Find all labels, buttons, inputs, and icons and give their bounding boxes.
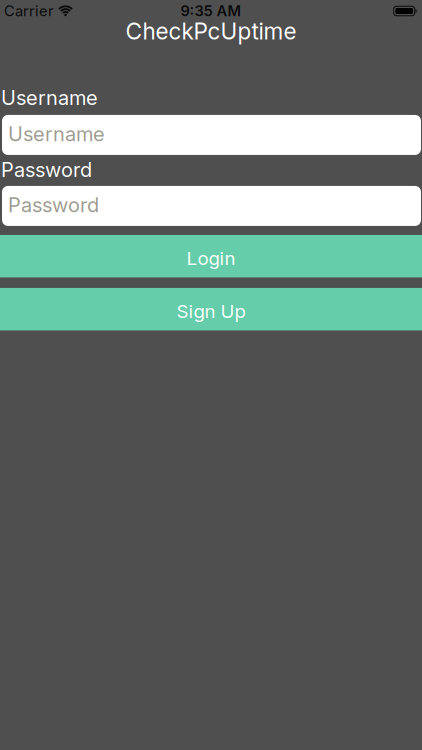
staticText: CheckPcUptime <box>125 18 296 45</box>
staticText: 9:35 AM <box>180 2 241 20</box>
textField[interactable]: Username <box>8 122 421 146</box>
staticText: Password <box>1 158 92 181</box>
button[interactable]: Sign Up <box>0 288 422 330</box>
staticText: Login <box>186 247 235 269</box>
staticText: Password <box>8 193 99 217</box>
staticText: Carrier <box>4 2 54 20</box>
secureTextField[interactable]: Password <box>8 193 421 217</box>
staticText: Sign Up <box>176 300 245 322</box>
staticText: Username <box>1 86 98 109</box>
button[interactable]: Login <box>0 235 422 277</box>
staticText: Username <box>8 122 105 146</box>
